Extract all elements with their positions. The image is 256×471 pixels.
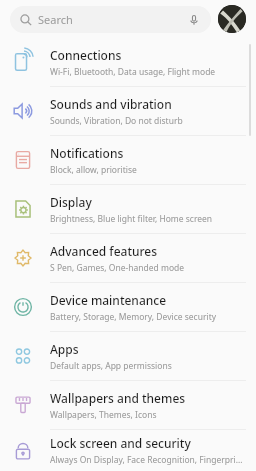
staticText: Device maintenance — [50, 292, 167, 308]
staticText: Wi-Fi, Bluetooth, Data usage, Flight mod… — [50, 66, 216, 78]
staticText: Connections — [50, 47, 122, 63]
button[interactable]: Connections — [0, 38, 256, 86]
button[interactable]: Advanced features — [0, 234, 256, 282]
staticText: Lock screen and security — [50, 435, 191, 451]
button[interactable]: Device maintenance — [0, 283, 256, 331]
staticText: Notifications — [50, 145, 124, 161]
staticText: Brightness, Blue light filter, Home scre… — [50, 213, 213, 225]
staticText: Default apps, App permissions — [50, 360, 172, 372]
button[interactable]: Display — [0, 185, 256, 233]
staticText: Apps — [50, 341, 79, 357]
button[interactable]: Sounds and vibration — [0, 87, 256, 135]
staticText: S Pen, Games, One-handed mode — [50, 262, 185, 274]
staticText: Wallpapers, Themes, Icons — [50, 409, 157, 421]
button[interactable]: Voice search — [187, 13, 201, 27]
button[interactable]: Lock screen and security — [0, 430, 256, 471]
staticText: Search — [38, 12, 73, 27]
staticText: Always On Display, Face Recognition, Fin… — [50, 454, 246, 466]
staticText: Battery, Storage, Memory, Device securit… — [50, 311, 217, 323]
staticText: Block, allow, prioritise — [50, 164, 137, 176]
button[interactable]: Apps — [0, 332, 256, 380]
button[interactable]: Search — [10, 6, 211, 33]
staticText: Sounds and vibration — [50, 96, 172, 112]
staticText: Display — [50, 194, 92, 210]
staticText: Wallpapers and themes — [50, 390, 186, 406]
button[interactable]: Account — [218, 5, 246, 33]
button[interactable]: Notifications — [0, 136, 256, 184]
staticText: Sounds, Vibration, Do not disturb — [50, 115, 183, 127]
staticText: Advanced features — [50, 243, 158, 259]
button[interactable]: Wallpapers and themes — [0, 381, 256, 429]
